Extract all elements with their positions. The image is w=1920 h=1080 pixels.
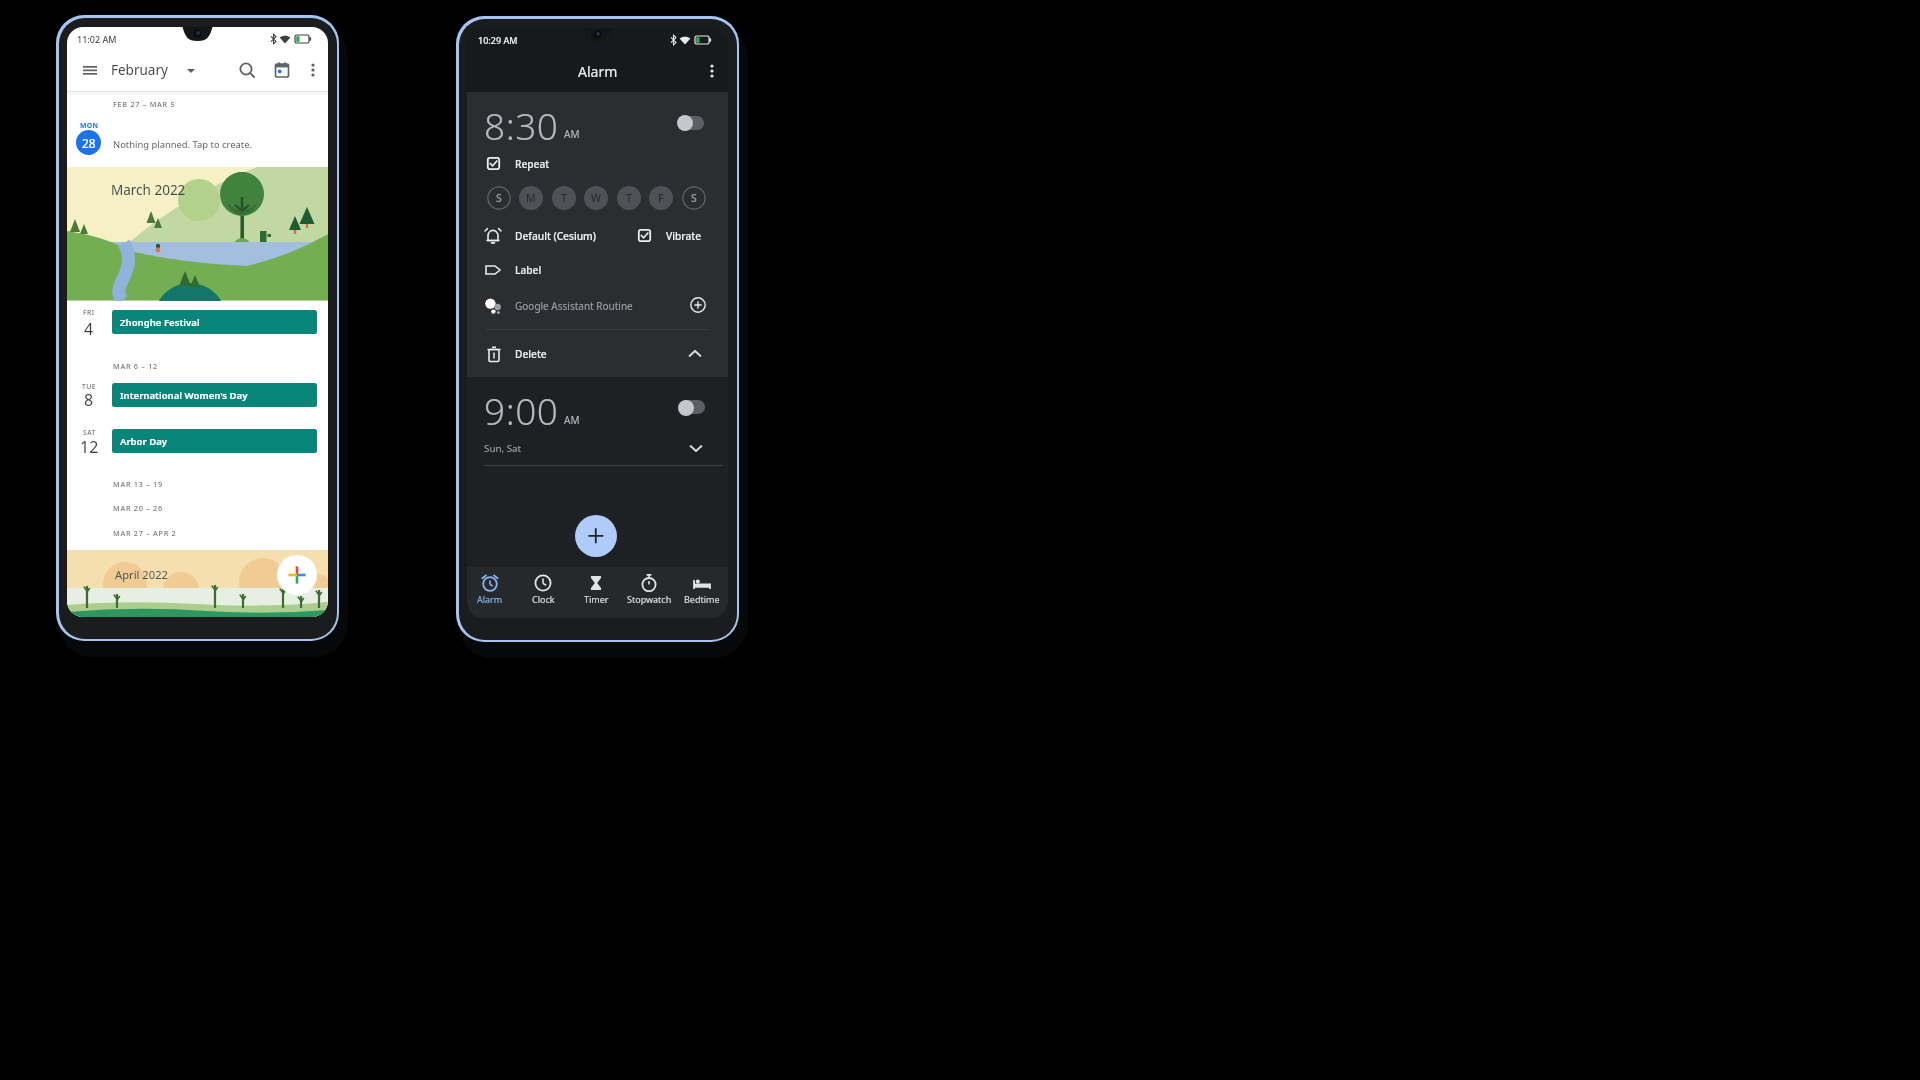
button[interactable]: W	[584, 186, 608, 210]
button[interactable]	[627, 224, 722, 247]
button[interactable]: Nothing planned. Tap to create.	[113, 134, 293, 154]
button[interactable]	[687, 440, 705, 456]
staticText: Stopwatch	[627, 593, 672, 605]
staticText: FRI	[83, 308, 95, 317]
staticText: AM	[564, 127, 580, 141]
staticText: AM	[564, 413, 580, 427]
staticText: 4	[84, 318, 94, 338]
button[interactable]	[236, 59, 258, 81]
staticText: 11:02 AM	[77, 33, 117, 45]
staticText: Alarm	[578, 62, 618, 81]
button[interactable]	[477, 436, 722, 460]
button[interactable]: T	[617, 186, 641, 210]
button[interactable]: M	[519, 186, 543, 210]
staticText: Timer	[584, 593, 609, 605]
staticText: SAT	[83, 428, 96, 437]
button[interactable]	[467, 569, 515, 615]
staticText: 28	[82, 135, 96, 151]
button[interactable]	[686, 346, 704, 362]
staticText: Repeat	[515, 157, 550, 171]
staticText: Arbor Day	[120, 435, 168, 448]
staticText: 9:00	[484, 385, 559, 433]
staticText: 8	[84, 389, 94, 409]
staticText: 12	[80, 436, 99, 456]
button[interactable]	[575, 515, 617, 557]
staticText: International Women's Day	[120, 389, 248, 402]
button[interactable]	[677, 569, 727, 615]
button[interactable]	[477, 224, 627, 247]
button[interactable]: S	[487, 186, 511, 210]
staticText: F	[658, 191, 664, 205]
staticText: MAR 6 – 12	[113, 361, 158, 371]
staticText: Nothing planned. Tap to create.	[113, 138, 252, 151]
button[interactable]	[304, 59, 322, 81]
staticText: Label	[515, 263, 542, 277]
button[interactable]	[487, 157, 500, 170]
staticText: S	[691, 191, 697, 205]
staticText: W	[591, 191, 601, 205]
button[interactable]: T	[552, 186, 576, 210]
button[interactable]: S	[682, 186, 706, 210]
staticText: Google Assistant Routine	[515, 299, 633, 313]
button[interactable]	[477, 258, 722, 281]
button[interactable]	[678, 116, 704, 130]
staticText: Default (Cesium)	[515, 229, 596, 243]
staticText: Zhonghe Festival	[120, 316, 200, 329]
button[interactable]: F	[649, 186, 673, 210]
button[interactable]	[482, 342, 506, 366]
staticText: Delete	[515, 347, 547, 361]
button[interactable]	[477, 153, 587, 175]
staticText: February	[111, 61, 168, 79]
button[interactable]	[477, 341, 722, 366]
button[interactable]	[679, 400, 705, 414]
staticText: M	[526, 191, 536, 205]
button[interactable]: Arbor Day	[112, 429, 317, 453]
button[interactable]: 28	[76, 130, 101, 155]
button[interactable]	[690, 297, 706, 313]
staticText: FEB 27 – MAR 5	[113, 99, 176, 109]
button[interactable]	[477, 103, 657, 145]
staticText: T	[561, 191, 567, 205]
staticText: April 2022	[115, 567, 168, 582]
staticText: 8:30	[484, 100, 559, 148]
button[interactable]	[703, 60, 721, 82]
button[interactable]	[477, 388, 657, 430]
button[interactable]	[477, 293, 677, 317]
staticText: Clock	[532, 593, 555, 605]
staticText: 10:29 AM	[478, 34, 518, 46]
staticText: MAR 20 – 26	[113, 503, 163, 513]
button[interactable]	[638, 229, 651, 242]
staticText: March 2022	[111, 181, 186, 199]
button[interactable]	[571, 569, 621, 615]
staticText: Sun, Sat	[484, 442, 522, 455]
button[interactable]	[518, 569, 568, 615]
staticText: MAR 27 – APR 2	[113, 528, 177, 538]
staticText: MAR 13 – 19	[113, 479, 163, 489]
button[interactable]: Zhonghe Festival	[112, 310, 317, 334]
button[interactable]: International Women's Day	[112, 383, 317, 407]
staticText: Bedtime	[684, 593, 720, 605]
button[interactable]	[79, 59, 101, 81]
staticText: Alarm	[477, 593, 503, 605]
button[interactable]	[277, 555, 317, 595]
staticText: TUE	[82, 382, 96, 391]
button[interactable]	[624, 569, 674, 615]
staticText: Vibrate	[666, 229, 702, 243]
button[interactable]	[271, 59, 293, 81]
staticText: S	[496, 191, 502, 205]
button[interactable]: February	[111, 58, 211, 82]
staticText: MON	[80, 121, 99, 130]
staticText: T	[626, 191, 632, 205]
